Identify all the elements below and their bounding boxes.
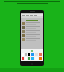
button[interactable]: Colour swatch: [20, 10, 44, 66]
button[interactable]: [22, 38, 42, 41]
button[interactable]: [22, 30, 42, 33]
button[interactable]: [22, 26, 42, 29]
button[interactable]: [21, 14, 43, 16]
button[interactable]: [22, 22, 42, 25]
button[interactable]: [22, 34, 42, 37]
